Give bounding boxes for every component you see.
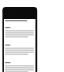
button[interactable]: Phone mockup showing a document [0, 0, 64, 72]
